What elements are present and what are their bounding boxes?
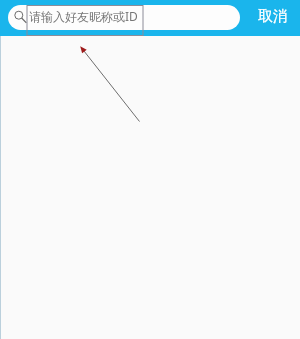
staticText: 取消: [258, 7, 288, 26]
button[interactable]: Search friends: [8, 5, 240, 30]
button[interactable]: 取消: [246, 0, 300, 34]
staticText: 请输入好友昵称或ID: [29, 8, 138, 24]
